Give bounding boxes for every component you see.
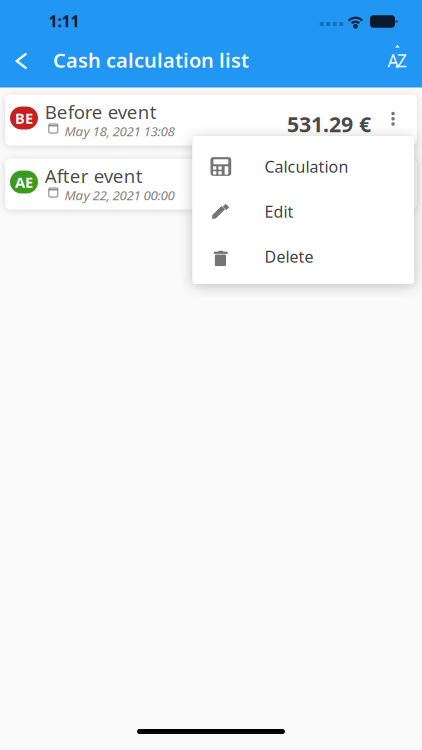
staticText: Delete: [264, 246, 313, 267]
button[interactable]: Delete: [192, 234, 414, 279]
staticText: May 18, 2021 13:08: [64, 122, 174, 140]
staticText: 1:11: [48, 10, 79, 32]
staticText: 531.29 €: [287, 109, 371, 139]
button[interactable]: Calculation: [192, 144, 414, 189]
staticText: Cash calculation list: [53, 46, 249, 73]
button[interactable]: Sort: [378, 35, 418, 79]
button[interactable]: AE: [5, 158, 417, 209]
button[interactable]: BE: [5, 94, 417, 145]
button[interactable]: Edit: [192, 189, 414, 234]
staticText: Calculation: [264, 156, 348, 177]
staticText: BE: [15, 108, 33, 128]
staticText: After event: [45, 163, 143, 188]
staticText: Z: [397, 49, 407, 72]
staticText: Edit: [264, 201, 293, 222]
staticText: A: [387, 49, 398, 72]
button[interactable]: Back: [4, 39, 40, 83]
staticText: AE: [15, 172, 33, 192]
staticText: May 22, 2021 00:00: [64, 186, 174, 204]
staticText: Before event: [45, 99, 157, 124]
